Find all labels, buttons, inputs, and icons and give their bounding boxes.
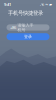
- staticText: +86: [10, 25, 16, 30]
- staticText: 手机号快捷登录: [8, 10, 43, 16]
- staticText: 登录: [24, 34, 32, 39]
- staticText: 请输入手机号: [17, 23, 33, 32]
- staticText: ᎐ᎏ ≈ ▰: [40, 2, 52, 7]
- button[interactable]: 登录: [6, 33, 49, 40]
- staticText: 9:41: [4, 2, 11, 7]
- button[interactable]: +86: [6, 24, 49, 31]
